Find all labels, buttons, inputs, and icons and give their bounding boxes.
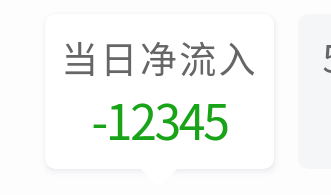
staticText: 当日净流入 bbox=[45, 30, 274, 84]
staticText: -12345 bbox=[45, 84, 274, 154]
button[interactable]: 5日净流入 bbox=[298, 14, 331, 169]
button[interactable]: 当日净流入 bbox=[45, 14, 274, 169]
staticText: 5日净流入 bbox=[298, 30, 331, 84]
